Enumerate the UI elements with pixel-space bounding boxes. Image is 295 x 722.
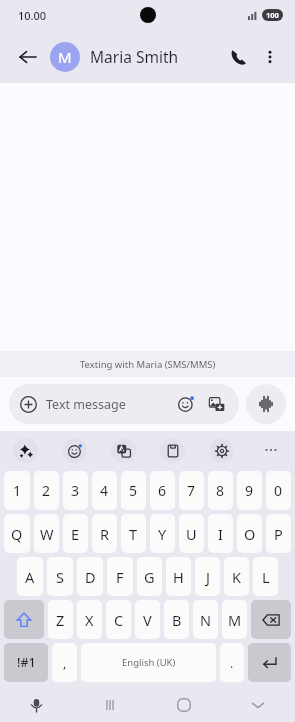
button[interactable]: 5 <box>121 471 146 510</box>
button[interactable]: O <box>237 514 262 553</box>
button[interactable]: V <box>135 600 160 639</box>
button[interactable]: J <box>195 557 220 596</box>
button[interactable]: G <box>137 557 162 596</box>
button[interactable]: . <box>220 643 244 682</box>
staticText: W <box>40 524 54 544</box>
staticText: Texting with Maria (SMS/MMS) <box>80 358 216 371</box>
button[interactable]: S <box>47 557 73 596</box>
staticText: !#1 <box>17 654 36 671</box>
button[interactable]: B <box>164 600 189 639</box>
staticText: N <box>200 610 212 630</box>
button[interactable]: Settings <box>197 431 246 469</box>
button[interactable]: Stickers <box>99 431 148 469</box>
staticText: M <box>228 610 242 630</box>
button[interactable]: , <box>52 643 77 682</box>
staticText: X <box>85 610 94 630</box>
staticText: 7 <box>187 481 196 500</box>
button[interactable]: N <box>193 600 218 639</box>
staticText: C <box>114 610 124 630</box>
button[interactable]: 4 <box>92 471 117 510</box>
button[interactable]: P <box>266 514 291 553</box>
button[interactable]: D <box>77 557 103 596</box>
button[interactable]: More <box>246 431 295 469</box>
staticText: 9 <box>245 481 254 500</box>
button[interactable]: Z <box>48 600 73 639</box>
button[interactable]: 9 <box>237 471 262 510</box>
staticText: S <box>56 567 64 587</box>
button[interactable]: Enter <box>248 643 291 682</box>
button[interactable]: Q <box>4 514 30 553</box>
button[interactable]: T <box>121 514 146 553</box>
button[interactable]: L <box>253 557 278 596</box>
staticText: 100 <box>266 10 279 20</box>
button[interactable]: X <box>77 600 102 639</box>
staticText: 0 <box>274 481 283 500</box>
button[interactable]: Hide keyboard <box>221 688 295 722</box>
button[interactable]: 8 <box>208 471 233 510</box>
button[interactable]: Voice message <box>246 384 286 424</box>
button[interactable]: Text message <box>9 384 239 424</box>
staticText: G <box>144 567 155 587</box>
staticText: U <box>186 524 197 544</box>
button[interactable]: Attach image <box>206 393 228 415</box>
staticText: 5 <box>129 481 138 500</box>
button[interactable]: Emoji keyboard <box>50 431 99 469</box>
button[interactable]: H <box>166 557 191 596</box>
staticText: Text message <box>46 396 175 413</box>
button[interactable]: R <box>92 514 117 553</box>
button[interactable]: English (UK) <box>81 643 216 682</box>
staticText: I <box>218 524 223 544</box>
button[interactable]: E <box>63 514 88 553</box>
button[interactable]: Shift <box>4 600 44 639</box>
staticText: 4 <box>100 481 109 500</box>
staticText: 3 <box>71 481 80 500</box>
button[interactable]: More options <box>255 42 285 72</box>
staticText: 1 <box>13 481 22 500</box>
button[interactable]: 1 <box>4 471 30 510</box>
staticText: F <box>116 567 124 587</box>
button[interactable]: M <box>222 600 247 639</box>
button[interactable]: 3 <box>63 471 88 510</box>
button[interactable]: !#1 <box>4 643 48 682</box>
button[interactable]: Back <box>10 39 46 75</box>
staticText: 2 <box>42 481 51 500</box>
button[interactable]: W <box>34 514 59 553</box>
button[interactable]: Y <box>150 514 175 553</box>
button[interactable]: 0 <box>266 471 291 510</box>
staticText: A <box>25 567 35 587</box>
button[interactable]: 6 <box>150 471 175 510</box>
staticText: . <box>230 655 234 671</box>
button[interactable]: Backspace <box>251 600 291 639</box>
staticText: E <box>71 524 80 544</box>
button[interactable]: 7 <box>179 471 204 510</box>
staticText: H <box>173 567 184 587</box>
staticText: R <box>100 524 110 544</box>
button[interactable]: I <box>208 514 233 553</box>
staticText: M <box>58 47 72 67</box>
staticText: English (UK) <box>122 656 176 669</box>
staticText: K <box>232 567 241 587</box>
staticText: D <box>85 567 96 587</box>
button[interactable]: U <box>179 514 204 553</box>
button[interactable]: C <box>106 600 131 639</box>
button[interactable]: Recent apps <box>73 688 147 722</box>
button[interactable]: Call <box>221 40 255 74</box>
button[interactable]: K <box>224 557 249 596</box>
staticText: L <box>262 567 270 587</box>
button[interactable]: 2 <box>34 471 59 510</box>
button[interactable]: Emoji <box>175 393 197 415</box>
button[interactable]: F <box>107 557 133 596</box>
staticText: J <box>206 567 210 587</box>
staticText: Q <box>11 524 23 544</box>
staticText: O <box>244 524 256 544</box>
button[interactable]: Clipboard <box>148 431 197 469</box>
button[interactable]: Voice input <box>0 688 73 722</box>
button[interactable]: M <box>50 42 80 72</box>
staticText: Y <box>158 524 167 544</box>
staticText: 10.00 <box>18 8 47 23</box>
button[interactable]: Home <box>147 688 221 722</box>
staticText: , <box>63 655 67 671</box>
staticText: P <box>274 524 283 544</box>
button[interactable]: AI suggestions <box>0 431 50 469</box>
button[interactable]: A <box>17 557 43 596</box>
